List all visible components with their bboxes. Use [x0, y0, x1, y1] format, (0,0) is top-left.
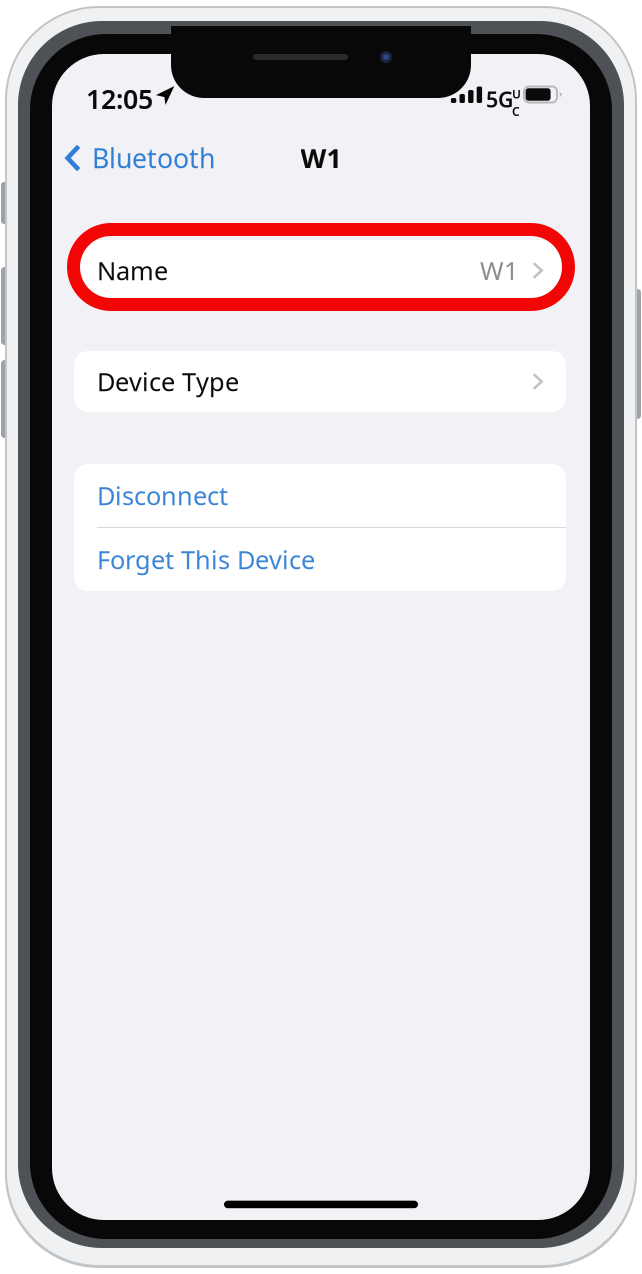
button[interactable]: Name	[74, 240, 566, 301]
button[interactable]: Forget This Device	[74, 528, 566, 591]
staticText: 5G	[486, 85, 513, 113]
staticText: W1	[300, 140, 341, 176]
staticText: W1	[480, 254, 518, 287]
staticText: Forget This Device	[97, 543, 315, 576]
button[interactable]: Bluetooth	[52, 132, 225, 184]
staticText: Name	[97, 254, 168, 287]
staticText: C	[512, 103, 520, 119]
button[interactable]: Device Type	[74, 351, 566, 412]
staticText: U	[512, 86, 521, 102]
button[interactable]: Disconnect	[74, 464, 566, 527]
staticText: Disconnect	[97, 479, 228, 512]
staticText: Device Type	[97, 365, 239, 398]
staticText: 12:05	[86, 81, 153, 116]
staticText: Bluetooth	[92, 140, 215, 176]
